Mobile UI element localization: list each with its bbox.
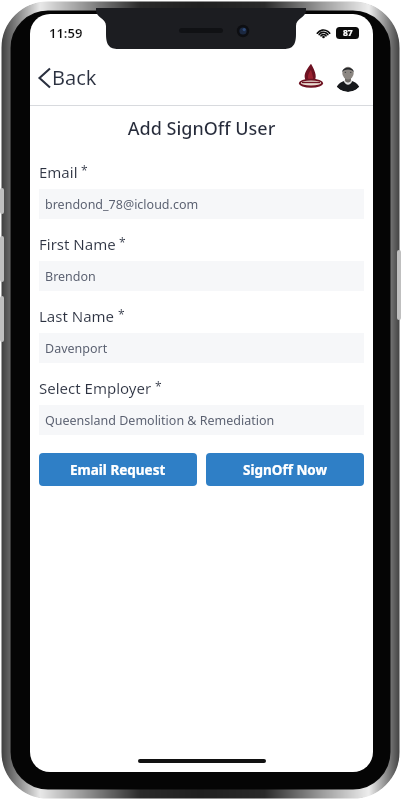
- button[interactable]: Email Request: [39, 453, 197, 486]
- staticText: Select Employer: [39, 378, 152, 398]
- button[interactable]: brendond_78@icloud.com: [39, 189, 364, 219]
- staticText: Email: [39, 162, 78, 182]
- staticText: Queensland Demolition & Remediation: [45, 412, 275, 429]
- button[interactable]: Profile: [333, 62, 363, 92]
- staticText: Back: [52, 64, 97, 91]
- staticText: *: [155, 378, 162, 394]
- staticText: First Name: [39, 234, 116, 254]
- button[interactable]: Brendon: [39, 261, 364, 291]
- staticText: *: [118, 306, 125, 322]
- button[interactable]: Company logo: [296, 62, 326, 92]
- button[interactable]: SignOff Now: [206, 453, 364, 486]
- button[interactable]: Davenport: [39, 333, 364, 363]
- staticText: Email Request: [70, 461, 166, 479]
- staticText: Last Name: [39, 306, 115, 326]
- staticText: SignOff Now: [243, 461, 328, 479]
- staticText: *: [119, 234, 126, 250]
- staticText: 87: [343, 27, 353, 39]
- button[interactable]: Back: [30, 60, 105, 95]
- staticText: brendond_78@icloud.com: [45, 196, 199, 213]
- button[interactable]: Queensland Demolition & Remediation: [39, 405, 364, 435]
- staticText: Brendon: [45, 268, 96, 285]
- staticText: *: [81, 162, 88, 178]
- staticText: Davenport: [45, 340, 108, 357]
- staticText: 11:59: [49, 24, 83, 42]
- staticText: Add SignOff User: [30, 116, 373, 141]
